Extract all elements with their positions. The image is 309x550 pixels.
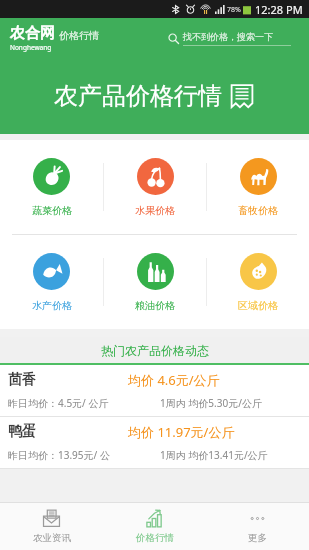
button[interactable]: 茴香 xyxy=(0,365,309,416)
button[interactable]: 水产价格 xyxy=(0,235,103,329)
button[interactable]: 更多 xyxy=(206,503,309,550)
staticText: 1周内 均价5.30元/公斤 xyxy=(160,396,301,410)
staticText: 区域价格 xyxy=(238,299,278,312)
staticText: 水果价格 xyxy=(135,204,175,217)
staticText: 昨日均价：4.5元/ 公斤 xyxy=(8,396,160,410)
staticText: 粮油价格 xyxy=(135,299,175,312)
staticText: 鸭蛋 xyxy=(8,423,128,441)
button[interactable]: 鸭蛋 xyxy=(0,417,309,468)
staticText: 价格行情 xyxy=(136,532,174,544)
staticText: 更多 xyxy=(248,532,267,544)
staticText: 均价 4.6元/公斤 xyxy=(128,371,301,389)
staticText: 农合网 xyxy=(10,24,55,43)
staticText: 昨日均价：13.95元/ 公 xyxy=(8,448,160,462)
button[interactable]: 畜牧价格 xyxy=(207,140,309,234)
staticText: 农产品价格行情 xyxy=(54,81,222,111)
button[interactable]: 价格行情 xyxy=(103,503,206,550)
staticText: 78% xyxy=(227,5,241,15)
staticText: 均价 11.97元/公斤 xyxy=(128,423,301,441)
button[interactable]: 蔬菜价格 xyxy=(0,140,103,234)
staticText: 找不到价格，搜索一下 xyxy=(183,31,273,42)
staticText: 农业资讯 xyxy=(33,532,71,544)
button[interactable]: 水果价格 xyxy=(104,140,206,234)
staticText: 12:28 PM xyxy=(255,2,303,17)
button[interactable]: 区域价格 xyxy=(207,235,309,329)
staticText: 蔬菜价格 xyxy=(32,204,72,217)
button[interactable]: 搜索 xyxy=(168,31,296,46)
button[interactable]: 粮油价格 xyxy=(104,235,206,329)
staticText: 茴香 xyxy=(8,371,128,389)
staticText: 热门农产品价格动态 xyxy=(101,343,209,358)
staticText: 价格行情 xyxy=(59,29,99,42)
staticText: 畜牧价格 xyxy=(238,204,278,217)
button[interactable]: 农业资讯 xyxy=(0,503,103,550)
staticText: Nonghewang xyxy=(10,43,52,52)
staticText: 水产价格 xyxy=(32,299,72,312)
staticText: 1周内 均价13.41元/公斤 xyxy=(160,448,301,462)
